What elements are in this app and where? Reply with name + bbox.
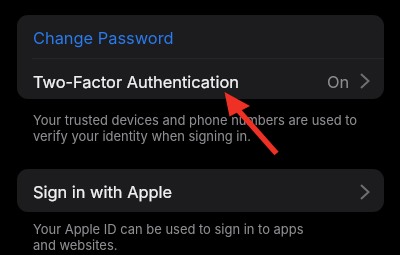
- staticText: Your Apple ID can be used to sign in to …: [33, 221, 318, 253]
- other: Open Sign in with Apple: [358, 180, 372, 204]
- button[interactable]: Change Password: [17, 15, 384, 58]
- staticText: Your trusted devices and phone numbers a…: [33, 112, 363, 144]
- button[interactable]: Sign in with Apple: [17, 169, 384, 212]
- other: Open Two-Factor Authentication: [358, 69, 372, 93]
- staticText: Change Password: [33, 28, 174, 48]
- staticText: On: [327, 72, 350, 92]
- staticText: Sign in with Apple: [33, 182, 173, 202]
- button[interactable]: Two-Factor Authentication: [17, 59, 384, 99]
- staticText: Two-Factor Authentication: [33, 72, 239, 92]
